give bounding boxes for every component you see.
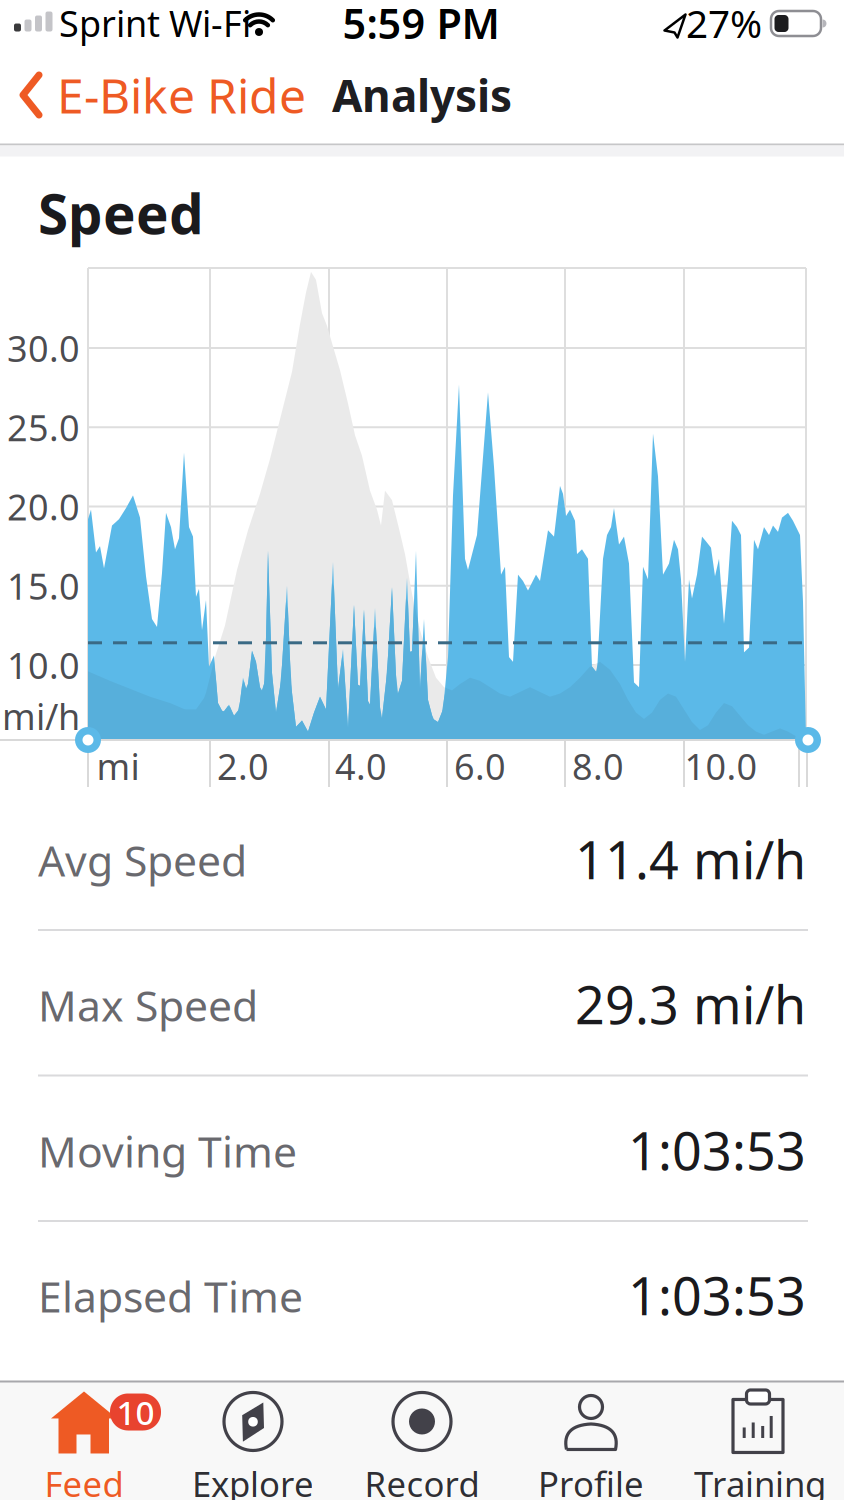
staticText: 2.0	[217, 742, 269, 790]
staticText: 15.0	[7, 562, 80, 610]
button[interactable]: Feed	[0, 1389, 168, 1500]
staticText: Training	[694, 1460, 826, 1500]
staticText: 4.0	[335, 742, 387, 790]
staticText: Feed	[44, 1460, 123, 1500]
staticText: Avg Speed	[38, 832, 247, 888]
staticText: 10.0	[684, 742, 757, 790]
staticText: 27%	[686, 0, 762, 49]
button[interactable]: Record	[338, 1389, 506, 1500]
staticText: 5:59 PM	[342, 0, 499, 50]
staticText: Moving Time	[38, 1123, 297, 1179]
staticText: Elapsed Time	[38, 1268, 303, 1324]
staticText: Profile	[538, 1460, 644, 1500]
staticText: 10	[116, 1390, 154, 1434]
staticText: Analysis	[332, 66, 512, 124]
button[interactable]: Back	[20, 63, 380, 127]
staticText: 30.0	[7, 324, 80, 372]
staticText: mi	[96, 742, 139, 790]
staticText: Explore	[192, 1460, 314, 1500]
staticText: 29.3 mi/h	[575, 969, 806, 1039]
staticText: Sprint Wi-Fi	[59, 0, 251, 47]
staticText: Max Speed	[38, 977, 258, 1033]
button[interactable]: Explore	[169, 1389, 337, 1500]
staticText: 6.0	[454, 742, 506, 790]
staticText: E-Bike Ride	[57, 63, 306, 127]
staticText: 10.0	[7, 641, 80, 689]
staticText: 25.0	[7, 403, 80, 451]
staticText: 1:03:53	[628, 1115, 806, 1185]
staticText: 8.0	[572, 742, 624, 790]
button[interactable]: Profile	[507, 1389, 675, 1500]
staticText: 1:03:53	[628, 1260, 806, 1330]
staticText: 11.4 mi/h	[575, 824, 806, 894]
staticText: Speed	[38, 177, 204, 249]
staticText: Record	[364, 1460, 479, 1500]
button[interactable]: Training	[676, 1389, 844, 1500]
staticText: 20.0	[7, 483, 80, 530]
staticText: mi/h	[2, 692, 80, 740]
